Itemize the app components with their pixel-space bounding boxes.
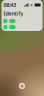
staticText: 08:43 [3, 1, 16, 8]
staticText: Identify [3, 10, 23, 17]
button[interactable]: Action [3, 25, 7, 29]
button[interactable]: Action [3, 19, 7, 23]
button[interactable]: Action [9, 25, 15, 29]
button[interactable]: Shutter [19, 83, 25, 89]
button[interactable]: Action [9, 19, 15, 23]
